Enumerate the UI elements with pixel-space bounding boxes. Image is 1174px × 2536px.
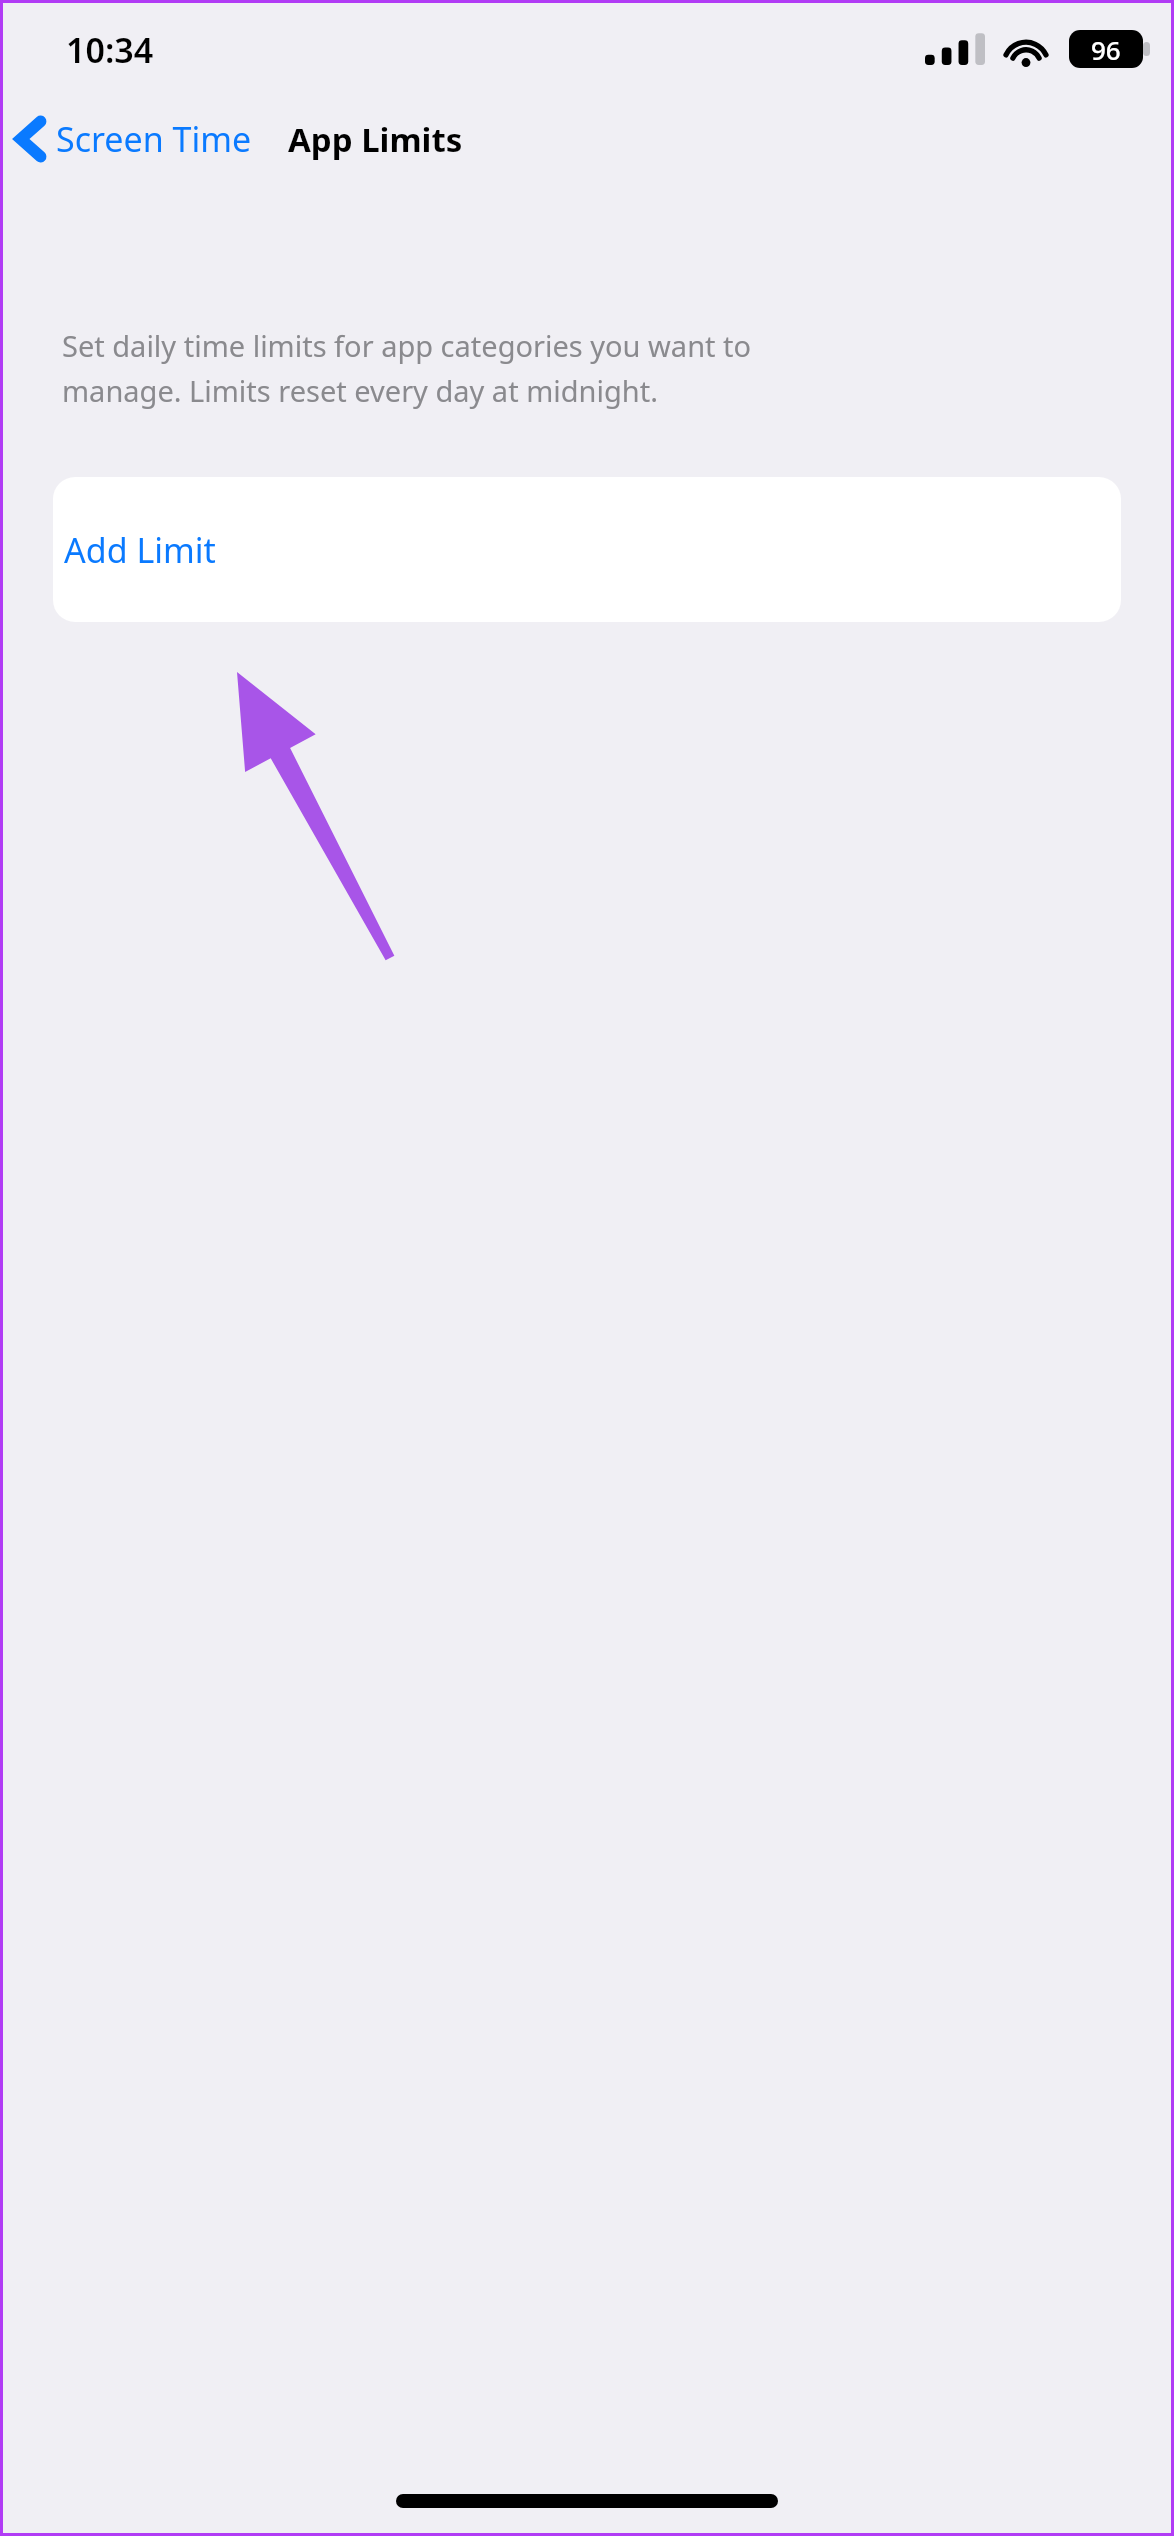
staticText: App Limits — [288, 117, 463, 162]
other: Home indicator — [396, 2494, 778, 2508]
staticText: Set daily time limits for app categories… — [62, 326, 752, 411]
button[interactable]: Screen Time — [0, 108, 266, 170]
staticText: Screen Time — [56, 116, 252, 162]
staticText: 96 — [1091, 32, 1121, 67]
staticText: Add Limit — [64, 527, 216, 573]
staticText: 10:34 — [66, 27, 154, 73]
button[interactable]: Add Limit — [53, 477, 1121, 622]
